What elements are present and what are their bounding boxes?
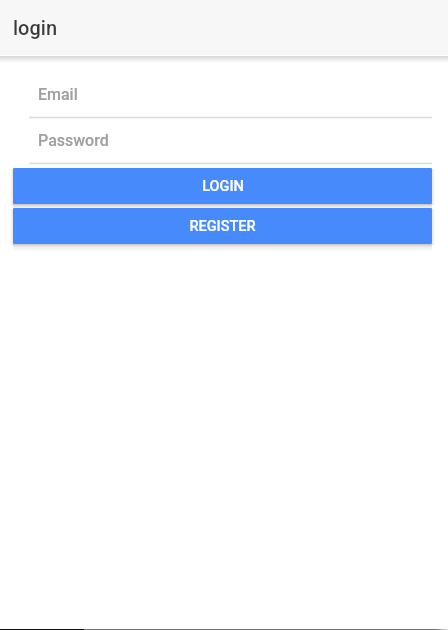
button[interactable]: REGISTER <box>13 208 432 244</box>
button[interactable]: LOGIN <box>13 168 432 204</box>
button[interactable]: Password <box>29 117 432 163</box>
staticText: REGISTER <box>189 218 256 235</box>
staticText: LOGIN <box>202 178 244 195</box>
staticText: Email <box>38 85 78 104</box>
button[interactable]: login <box>0 0 448 55</box>
button[interactable]: Email <box>29 71 432 117</box>
staticText: login <box>13 16 58 39</box>
staticText: Password <box>38 131 109 150</box>
